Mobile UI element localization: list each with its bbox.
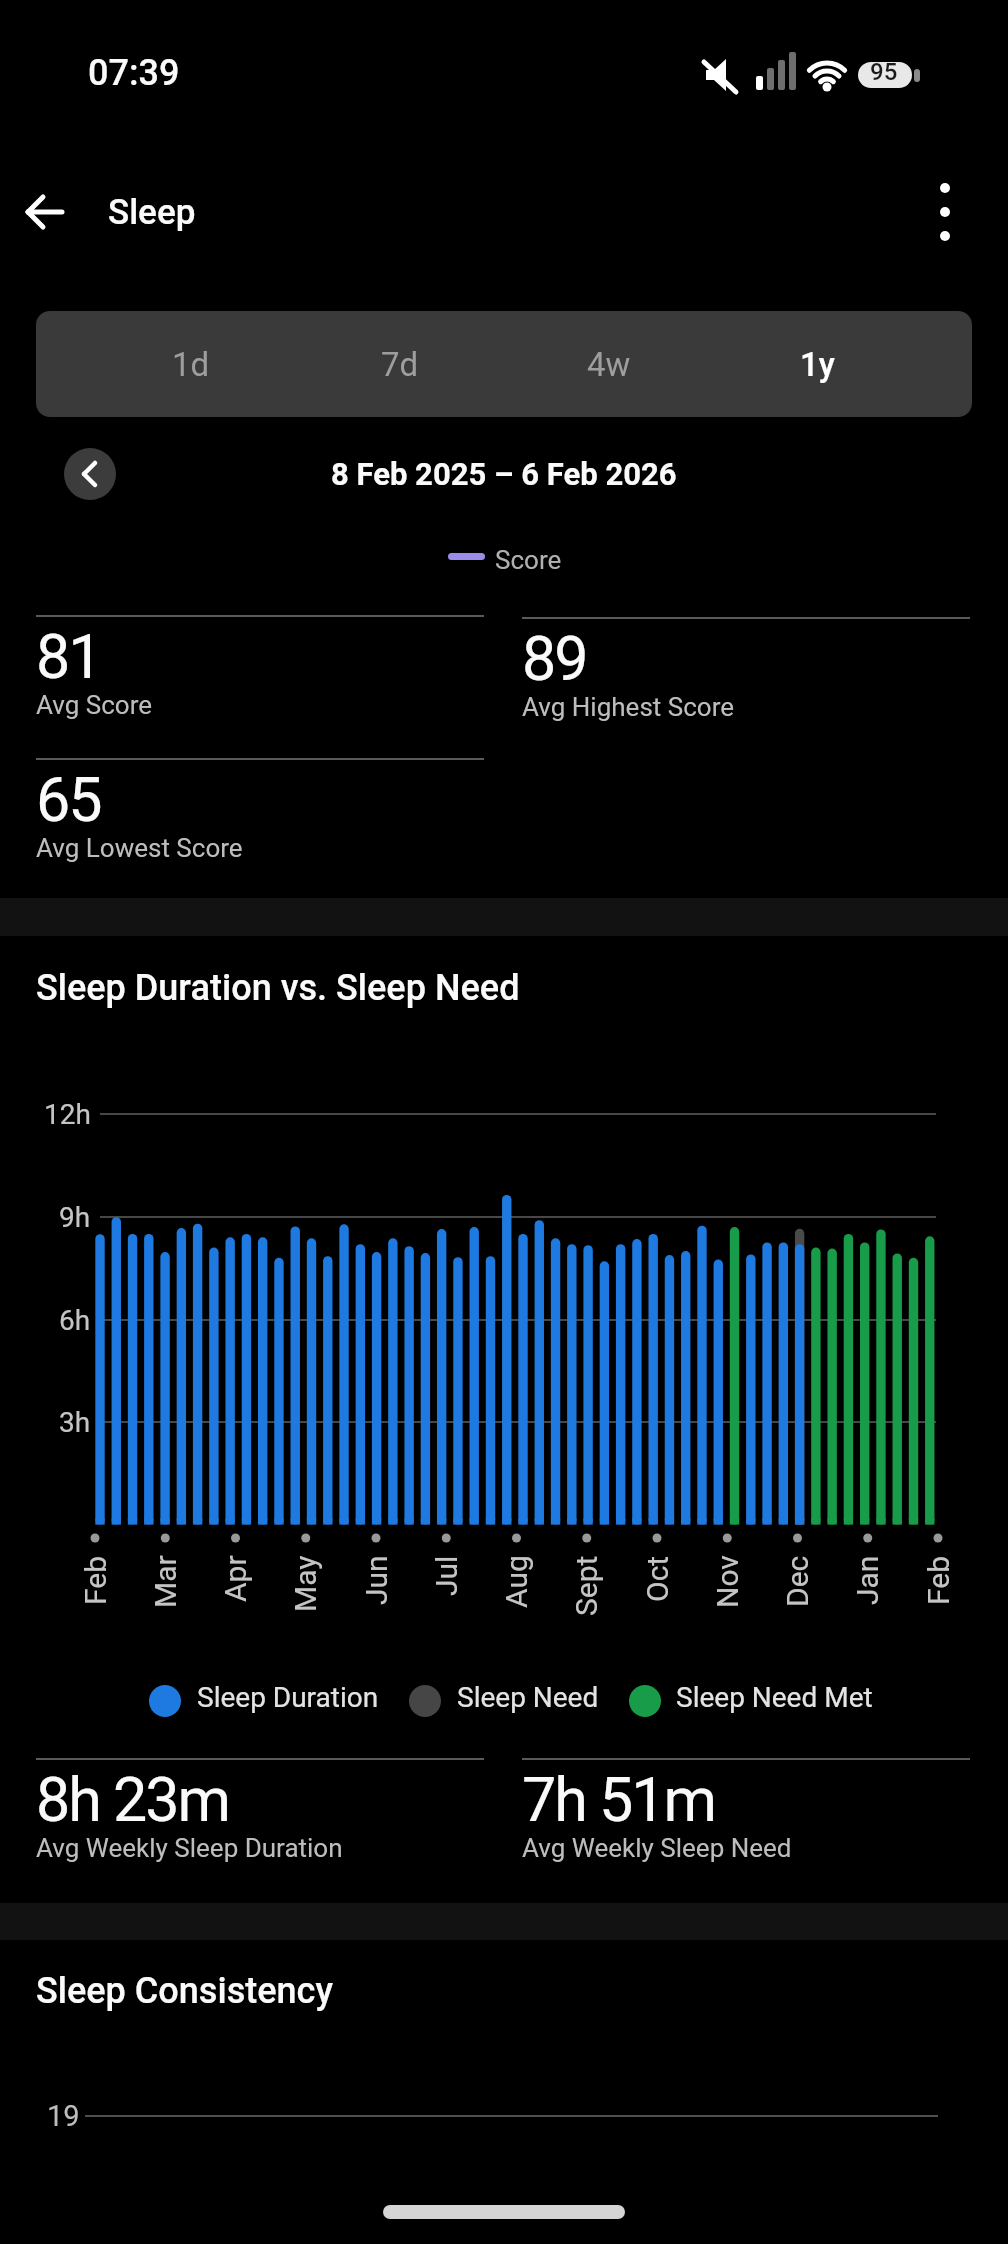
staticText: 89 xyxy=(522,623,587,694)
button[interactable]: 7d xyxy=(295,311,504,417)
staticText: 81 xyxy=(36,621,101,692)
staticText: 65 xyxy=(36,764,101,835)
staticText: Avg Weekly Sleep Need xyxy=(522,1833,792,1863)
staticText: 7h 51m xyxy=(522,1764,716,1835)
staticText: Sleep Consistency xyxy=(36,1970,333,2012)
staticText: 07:39 xyxy=(88,52,180,94)
staticText: Sleep xyxy=(108,192,196,233)
staticText: Sleep Need Met xyxy=(676,1681,873,1714)
staticText: 1y xyxy=(800,345,835,384)
staticText: Avg Lowest Score xyxy=(36,833,243,863)
staticText: 8 Feb 2025 – 6 Feb 2026 xyxy=(331,456,677,492)
staticText: Avg Weekly Sleep Duration xyxy=(36,1833,343,1863)
staticText: Score xyxy=(495,545,562,575)
staticText: Sleep Duration xyxy=(197,1681,379,1714)
button[interactable]: 1y xyxy=(713,311,922,417)
staticText: 8h 23m xyxy=(36,1764,230,1835)
staticText: 19 xyxy=(47,2099,80,2133)
staticText: 1d xyxy=(172,345,210,384)
staticText: 95 xyxy=(870,58,898,86)
button[interactable] xyxy=(922,186,968,238)
staticText: Avg Highest Score xyxy=(522,692,734,722)
button[interactable] xyxy=(64,448,116,500)
button[interactable]: 4w xyxy=(504,311,713,417)
staticText: Sleep Need xyxy=(457,1681,599,1714)
staticText: 4w xyxy=(587,345,631,384)
button[interactable] xyxy=(22,188,70,236)
staticText: 7d xyxy=(381,345,419,384)
staticText: Avg Score xyxy=(36,690,153,720)
button[interactable]: 1d xyxy=(86,311,295,417)
staticText: Sleep Duration vs. Sleep Need xyxy=(36,967,520,1009)
